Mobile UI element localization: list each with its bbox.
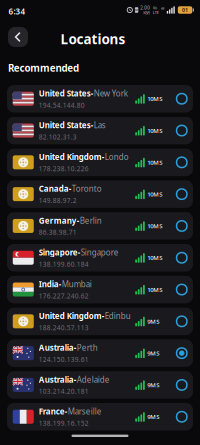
staticText: Adelaide	[77, 374, 110, 385]
staticText: 138.199.16.152	[39, 419, 89, 428]
staticText: LTE	[153, 10, 159, 15]
staticText: Locations	[60, 30, 125, 48]
staticText: Londo	[105, 151, 129, 162]
staticText: United Kingdom-	[39, 151, 105, 162]
staticText: 01	[182, 6, 188, 14]
staticText: 10MS	[147, 285, 162, 294]
staticText: Germany-	[39, 215, 80, 226]
staticText: Recommended	[8, 61, 79, 75]
staticText: 138.199.60.184	[39, 260, 89, 269]
staticText: 103.214.20.181	[39, 387, 89, 396]
staticText: Edinbu	[105, 310, 131, 321]
button[interactable]: France-	[7, 403, 193, 430]
staticText: 188.240.57.113	[39, 323, 89, 332]
staticText: 9MS	[147, 349, 159, 357]
staticText: Singapore	[81, 247, 119, 258]
button[interactable]: India-	[7, 276, 193, 303]
staticText: 194.54.144.80	[39, 101, 85, 110]
staticText: 176.227.240.62	[39, 291, 89, 300]
staticText: 10MS	[147, 158, 162, 166]
staticText: Singapore-	[39, 247, 81, 258]
staticText: 6:34	[8, 6, 25, 17]
staticText: KB/S	[143, 10, 150, 15]
staticText: Berlin	[80, 215, 102, 226]
button[interactable]	[8, 27, 28, 47]
staticText: 178.238.10.226	[39, 164, 89, 173]
staticText: 2.00	[140, 5, 150, 11]
button[interactable]: United States-	[7, 85, 193, 112]
staticText: United Kingdom-	[39, 310, 105, 321]
staticText: Marseille	[68, 406, 102, 417]
button[interactable]: Germany-	[7, 212, 193, 240]
button[interactable]: United Kingdom-	[7, 149, 193, 176]
button[interactable]: United Kingdom-	[7, 308, 193, 335]
staticText: 10MS	[147, 95, 162, 103]
staticText: ¹¹⁹	[161, 7, 164, 13]
staticText: United States-	[39, 120, 94, 131]
staticText: Mumbai	[62, 279, 92, 290]
button[interactable]: Canada-	[7, 180, 193, 208]
staticText: France-	[39, 406, 68, 417]
staticText: Vo	[153, 5, 157, 10]
staticText: 10MS	[147, 254, 162, 262]
staticText: Canada-	[39, 183, 72, 194]
staticText: Perth	[77, 342, 98, 353]
button[interactable]: United States-	[7, 117, 193, 144]
staticText: 9MS	[147, 413, 159, 421]
button[interactable]: Australia-	[7, 339, 193, 367]
staticText: Australia-	[39, 374, 77, 385]
staticText: New York	[94, 88, 128, 99]
staticText: 10MS	[147, 222, 162, 230]
staticText: 10MS	[147, 190, 162, 198]
button[interactable]: Singapore-	[7, 244, 193, 271]
staticText: 9MS	[147, 317, 159, 325]
button[interactable]: Australia-	[7, 371, 193, 399]
staticText: 149.88.97.2	[39, 196, 77, 205]
staticText: Las	[94, 120, 106, 131]
staticText: Australia-	[39, 342, 77, 353]
staticText: India-	[39, 279, 62, 290]
staticText: 9MS	[147, 381, 159, 389]
staticText: United States-	[39, 88, 94, 99]
staticText: 86.38.98.71	[39, 228, 77, 237]
staticText: 124.150.139.61	[39, 355, 89, 364]
staticText: 82.102.31.3	[39, 132, 77, 141]
staticText: 10MS	[147, 126, 162, 135]
staticText: Toronto	[72, 183, 102, 194]
